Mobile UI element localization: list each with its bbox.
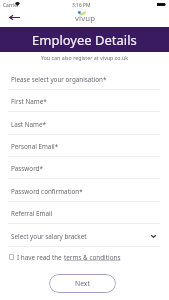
button[interactable]: Password* (0, 157, 169, 179)
staticText: vivup (75, 13, 96, 24)
button[interactable]: Password confirmation* (0, 180, 169, 202)
staticText: Employee Details (32, 31, 137, 49)
staticText: First Name* (11, 97, 47, 106)
staticText: Last Name* (11, 120, 46, 129)
staticText: terms & conditions (64, 253, 121, 262)
staticText: Next (75, 279, 90, 288)
button[interactable]: I have read the (9, 249, 161, 265)
button[interactable]: Back (3, 11, 24, 24)
staticText: Please select your organisation* (11, 75, 107, 84)
staticText: Select your salary bracket (11, 232, 87, 241)
button[interactable]: Last Name* (0, 113, 169, 135)
button[interactable]: Referral Email (0, 202, 169, 224)
staticText: Personal Email* (11, 142, 59, 151)
button[interactable]: Personal Email* (0, 135, 169, 157)
staticText: Carrier (3, 2, 19, 9)
staticText: I have read the (17, 253, 64, 262)
staticText: You can also register at vivup.co.uk (0, 54, 169, 61)
button[interactable]: Next (49, 274, 116, 293)
button[interactable]: First Name* (0, 90, 169, 112)
staticText: 3:16 PM (72, 2, 91, 9)
staticText: Password* (11, 164, 43, 173)
staticText: Referral Email (11, 209, 53, 218)
button[interactable]: Select your salary bracket (0, 225, 169, 247)
staticText: Password confirmation* (11, 187, 83, 196)
button[interactable]: Please select your organisation* (0, 68, 169, 90)
